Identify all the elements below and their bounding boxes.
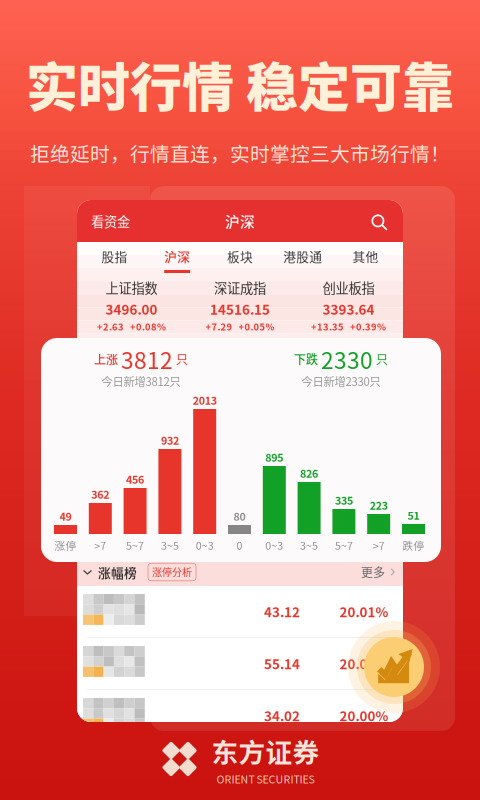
staticText: 2330	[321, 343, 373, 375]
staticText: +0.08%	[130, 320, 166, 333]
staticText: 上证指数	[105, 278, 157, 297]
staticText: 拒绝延时，行情直连，实时掌控三大市场行情！	[30, 139, 450, 167]
staticText: +0.39%	[350, 320, 386, 333]
staticText: 826	[300, 465, 318, 481]
button[interactable]: 搜索	[364, 207, 396, 239]
staticText: 51	[407, 507, 419, 523]
button[interactable]: 43.12	[77, 586, 403, 637]
button[interactable]: 更多	[339, 558, 397, 586]
staticText: 看资金	[91, 211, 130, 231]
staticText: 涨停	[54, 537, 76, 553]
staticText: 沪深	[225, 210, 255, 232]
staticText: 3393.64	[323, 299, 375, 319]
staticText: 0~3	[196, 537, 214, 553]
staticText: 东方证券	[211, 731, 319, 770]
staticText: 创业板指	[323, 278, 375, 297]
staticText: +0.05%	[238, 320, 274, 333]
staticText: 456	[126, 471, 144, 487]
staticText: 14516.15	[210, 299, 270, 319]
staticText: 895	[265, 449, 283, 465]
button[interactable]: 行情分析	[364, 637, 424, 697]
staticText: 3~5	[161, 537, 179, 553]
staticText: 0~3	[265, 537, 283, 553]
staticText: 34.02	[264, 706, 300, 725]
staticText: 2013	[193, 392, 217, 408]
staticText: 涨幅榜	[98, 563, 137, 581]
staticText: >7	[373, 537, 385, 553]
staticText: 下跌	[294, 350, 318, 368]
button[interactable]: 板块	[209, 242, 271, 278]
staticText: 深证成指	[214, 278, 266, 297]
staticText: +2.63	[97, 320, 124, 333]
staticText: 20.01%	[339, 602, 388, 621]
staticText: 43.12	[264, 602, 300, 621]
staticText: +13.35	[311, 320, 344, 333]
staticText: +7.29	[205, 320, 232, 333]
staticText: 只	[176, 350, 188, 368]
staticText: 335	[335, 492, 353, 508]
staticText: 5~7	[126, 537, 144, 553]
staticText: 只	[376, 350, 388, 368]
staticText: 板块	[227, 247, 253, 265]
staticText: ORIENT SECURITIES	[216, 771, 314, 786]
button[interactable]: 34.02	[77, 690, 403, 741]
staticText: 3496.00	[105, 299, 157, 319]
staticText: 3~5	[300, 537, 318, 553]
staticText: 20.00%	[339, 706, 388, 725]
staticText: 今日新增3812只	[101, 373, 180, 389]
staticText: 股指	[101, 247, 127, 265]
staticText: 0	[236, 537, 242, 553]
button[interactable]: 涨幅榜	[82, 558, 262, 586]
staticText: 涨停分析	[152, 565, 192, 579]
staticText: 沪深	[164, 247, 190, 265]
staticText: 3812	[121, 343, 173, 375]
staticText: 今日新增2330只	[301, 373, 380, 389]
staticText: 跌停	[402, 537, 424, 553]
button[interactable]: 其他	[334, 242, 397, 278]
staticText: 5~7	[335, 537, 353, 553]
button[interactable]: 股指	[83, 242, 146, 278]
staticText: 更多	[361, 563, 385, 581]
staticText: 932	[161, 432, 179, 448]
staticText: 55.14	[264, 654, 300, 673]
button[interactable]: 港股通	[271, 242, 334, 278]
staticText: >7	[94, 537, 106, 553]
staticText: 223	[370, 497, 388, 513]
staticText: 上涨	[94, 350, 118, 368]
staticText: 49	[59, 508, 71, 524]
staticText: 港股通	[283, 247, 322, 265]
staticText: 其他	[353, 247, 379, 265]
button[interactable]: 55.14	[77, 638, 403, 689]
staticText: 20.00%	[339, 654, 388, 673]
staticText: 实时行情 稳定可靠	[26, 46, 454, 122]
button[interactable]: 沪深	[146, 242, 209, 278]
staticText: 362	[91, 486, 109, 502]
staticText: 80	[233, 508, 245, 524]
button[interactable]: 看资金	[91, 200, 161, 242]
